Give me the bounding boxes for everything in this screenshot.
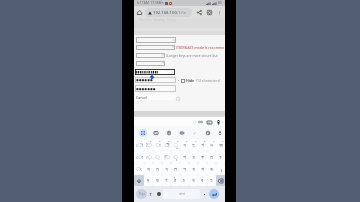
staticText: ষ	[210, 167, 213, 172]
button[interactable]: Hide password	[181, 79, 185, 83]
staticText: ো	[136, 155, 143, 160]
button[interactable]: ঢ	[180, 175, 189, 186]
button[interactable]: Handwriting	[188, 126, 201, 139]
button[interactable]: ে	[144, 151, 153, 163]
staticText: থ	[192, 178, 195, 183]
button[interactable]	[136, 37, 176, 43]
button[interactable]: More options	[214, 6, 225, 19]
staticText: ?১২৩	[139, 192, 145, 196]
button[interactable]: ো	[134, 151, 144, 163]
button[interactable]: Payment cards	[205, 118, 214, 126]
button[interactable]: ধ	[198, 175, 207, 186]
button[interactable]: জ	[216, 139, 225, 151]
button[interactable]: Keyboard layouts	[136, 126, 149, 139]
button[interactable]: ত	[207, 151, 216, 163]
button[interactable]: Clipboard	[162, 126, 175, 139]
staticText: দ	[147, 178, 150, 183]
button[interactable]: ি	[162, 151, 171, 163]
staticText: ৌ	[136, 143, 143, 148]
button[interactable]: Emoji	[175, 126, 188, 139]
button[interactable]: ●●●●●●	[135, 77, 176, 83]
button[interactable]: Emoji	[154, 186, 163, 202]
staticText: 7	[195, 139, 197, 142]
button[interactable]: ী	[162, 139, 171, 151]
button[interactable]: ঠ	[171, 175, 180, 186]
staticText: ী	[164, 143, 170, 148]
button[interactable]: হ	[207, 175, 216, 186]
button[interactable]: Voice input	[214, 126, 225, 139]
button[interactable]: ু	[171, 151, 180, 163]
button[interactable]: Share	[194, 6, 204, 19]
staticText: জ	[219, 143, 223, 148]
staticText: (13 characters)	[195, 78, 221, 83]
staticText: র	[192, 155, 195, 160]
button[interactable]: ▮▮▮▮▮▮▮▮▮▮▮▮	[135, 69, 175, 75]
button[interactable]: Period	[200, 186, 208, 202]
button[interactable]: ণ	[162, 175, 171, 186]
button[interactable]: Stickers	[149, 126, 162, 139]
button[interactable]: Home	[134, 6, 145, 19]
button[interactable]: া	[153, 139, 162, 151]
staticText: ব	[165, 167, 168, 172]
button[interactable]: স	[180, 163, 189, 175]
button[interactable]	[136, 45, 175, 50]
button[interactable]: Symbols	[136, 189, 147, 199]
button[interactable]: ক	[198, 151, 207, 163]
button[interactable]: হ	[189, 139, 198, 151]
button[interactable]: ং	[134, 163, 144, 175]
staticText: 3	[159, 139, 161, 142]
button[interactable]	[136, 61, 165, 66]
button[interactable]: গ	[198, 139, 207, 151]
button[interactable]: Shift	[134, 175, 144, 186]
staticText: ণ	[165, 178, 168, 183]
staticText: ি	[164, 155, 170, 160]
button[interactable]: দ	[207, 139, 216, 151]
button[interactable]: ।	[216, 163, 225, 175]
button[interactable]: ব	[180, 139, 189, 151]
button[interactable]: Backspace	[216, 175, 225, 186]
button[interactable]: ৈ	[144, 139, 153, 151]
staticText: শ	[201, 167, 204, 172]
button[interactable]: র	[189, 151, 198, 163]
button[interactable]: ৌ	[134, 139, 144, 151]
button[interactable]: Enter	[209, 189, 219, 199]
button[interactable]: Saved addresses	[214, 118, 223, 126]
button[interactable]: Reload	[204, 6, 214, 19]
button[interactable]: ড	[153, 175, 162, 186]
staticText: ম	[147, 167, 150, 172]
staticText: ধ	[201, 178, 204, 183]
button[interactable]	[136, 53, 165, 58]
button[interactable]: 192.168.100.1	[145, 8, 192, 17]
button[interactable]: ন	[153, 163, 162, 175]
button[interactable]: য	[189, 163, 198, 175]
button[interactable]: Switch language	[147, 186, 154, 202]
staticText: ত	[210, 155, 213, 160]
button[interactable]: থ	[189, 175, 198, 186]
button[interactable]: চ	[216, 151, 225, 163]
button[interactable]: Space	[163, 189, 200, 199]
button[interactable]: ল	[171, 163, 180, 175]
button[interactable]: ব	[162, 163, 171, 175]
staticText: Wireless Security Setup	[139, 18, 176, 22]
staticText: ূ	[173, 143, 178, 148]
staticText: গ	[201, 143, 204, 148]
staticText: 5	[177, 139, 179, 142]
button[interactable]: শ	[198, 163, 207, 175]
staticText: Hide	[186, 78, 195, 83]
button[interactable]: ষ	[207, 163, 216, 175]
staticText: হ	[210, 178, 213, 183]
button[interactable]: দ	[144, 175, 153, 186]
button[interactable]: প	[180, 151, 189, 163]
button[interactable]: ূ	[171, 139, 180, 151]
button[interactable]: ●●●●●●●	[135, 85, 176, 92]
button[interactable]: Saved passwords	[196, 118, 205, 126]
staticText: (Longer keys are more secure but	[166, 53, 218, 57]
staticText: 4	[168, 139, 170, 142]
button[interactable]: ম	[144, 163, 153, 175]
staticText: ে	[146, 155, 152, 160]
staticText: 1	[141, 139, 143, 142]
button[interactable]: Translate	[201, 126, 214, 139]
staticText: ল	[174, 167, 177, 172]
button[interactable]: Cancel	[135, 94, 176, 100]
button[interactable]: ্	[153, 151, 162, 163]
